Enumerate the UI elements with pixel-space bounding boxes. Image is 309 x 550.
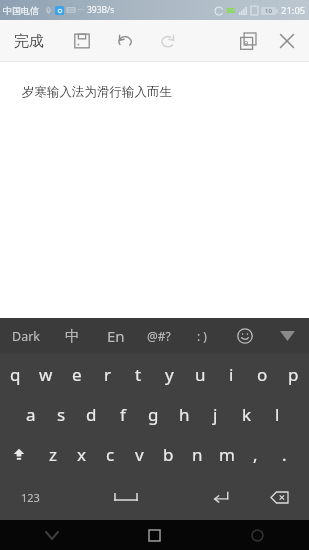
staticText: Dark	[12, 328, 40, 345]
button[interactable]: m	[212, 434, 241, 474]
staticText: t	[135, 363, 142, 386]
button[interactable]: d	[76, 394, 107, 434]
button[interactable]: c	[96, 434, 125, 474]
button[interactable]: l	[262, 394, 293, 434]
staticText: m	[219, 443, 235, 466]
staticText: i	[229, 363, 234, 386]
staticText: h	[179, 403, 190, 426]
button[interactable]: Recents	[206, 520, 309, 550]
button[interactable]: Space	[60, 474, 191, 520]
button[interactable]: Home	[103, 520, 206, 550]
staticText: g	[148, 403, 159, 426]
staticText: @#?	[147, 328, 171, 344]
staticText: v	[135, 443, 144, 466]
button[interactable]: Close	[270, 24, 304, 58]
staticText: z	[49, 443, 57, 466]
staticText: : )	[197, 328, 207, 344]
staticText: y	[165, 363, 174, 386]
staticText: j	[213, 403, 218, 426]
button[interactable]: Shift	[0, 434, 38, 474]
button[interactable]: z	[38, 434, 67, 474]
button[interactable]: 123	[0, 474, 60, 520]
button[interactable]: o	[247, 354, 278, 394]
button[interactable]: : )	[180, 318, 223, 354]
button[interactable]: Redo	[151, 24, 185, 58]
staticText: En	[107, 326, 125, 346]
button[interactable]: k	[231, 394, 262, 434]
staticText: 21:05	[281, 4, 306, 17]
staticText: u	[195, 363, 206, 386]
button[interactable]: u	[185, 354, 216, 394]
staticText: l	[275, 403, 280, 426]
button[interactable]: v	[125, 434, 154, 474]
button[interactable]: g	[138, 394, 169, 434]
button[interactable]: @#?	[137, 318, 180, 354]
button[interactable]: n	[183, 434, 212, 474]
staticText: 3G	[226, 6, 236, 16]
button[interactable]: p	[278, 354, 309, 394]
staticText: b	[163, 443, 174, 466]
staticText: a	[26, 403, 36, 426]
button[interactable]: Backspace	[250, 474, 309, 520]
button[interactable]: i	[216, 354, 247, 394]
button[interactable]: Enter	[191, 474, 250, 520]
staticText: s	[57, 403, 66, 426]
button[interactable]: Dark	[0, 318, 51, 354]
button[interactable]: En	[94, 318, 137, 354]
button[interactable]: Save	[65, 24, 99, 58]
button[interactable]: q	[0, 354, 30, 394]
button[interactable]: 完成	[6, 26, 52, 57]
staticText: c	[106, 443, 115, 466]
button[interactable]: w	[30, 354, 61, 394]
staticText: o	[257, 363, 268, 386]
button[interactable]: b	[154, 434, 183, 474]
button[interactable]: f	[107, 394, 138, 434]
button[interactable]: r	[92, 354, 123, 394]
staticText: 岁寒输入法为滑行输入而生	[22, 84, 172, 100]
button[interactable]: x	[67, 434, 96, 474]
button[interactable]: y	[154, 354, 185, 394]
staticText: 中	[65, 327, 80, 346]
staticText: p	[288, 363, 299, 386]
staticText: 9	[244, 38, 249, 48]
staticText: x	[77, 443, 86, 466]
staticText: e	[72, 363, 82, 386]
button[interactable]: h	[169, 394, 200, 434]
button[interactable]: Undo	[108, 24, 142, 58]
button[interactable]: Tabs	[231, 24, 265, 58]
button[interactable]: .	[270, 434, 299, 474]
staticText: f	[120, 403, 126, 426]
staticText: 完成	[14, 32, 44, 51]
button[interactable]: t	[123, 354, 154, 394]
staticText: 123	[21, 490, 40, 505]
staticText: n	[192, 443, 203, 466]
staticText: 393B/s	[87, 4, 115, 16]
button[interactable]: j	[200, 394, 231, 434]
button[interactable]: Emoji	[223, 318, 266, 354]
button[interactable]: ,	[241, 434, 270, 474]
staticText: ,	[253, 443, 258, 466]
staticText: 中国电信	[3, 5, 39, 16]
button[interactable]: 中	[51, 318, 94, 354]
button[interactable]: Back	[0, 520, 103, 550]
staticText: w	[39, 363, 53, 386]
staticText: d	[86, 403, 97, 426]
button[interactable]: s	[46, 394, 76, 434]
button[interactable]: e	[61, 354, 92, 394]
staticText: k	[242, 403, 252, 426]
staticText: 10	[265, 7, 272, 15]
button[interactable]: a	[16, 394, 46, 434]
staticText: r	[104, 363, 112, 386]
staticText: .	[282, 443, 287, 466]
button[interactable]: Hide keyboard	[266, 318, 309, 354]
staticText: q	[10, 363, 21, 386]
staticText: ···	[78, 5, 84, 15]
